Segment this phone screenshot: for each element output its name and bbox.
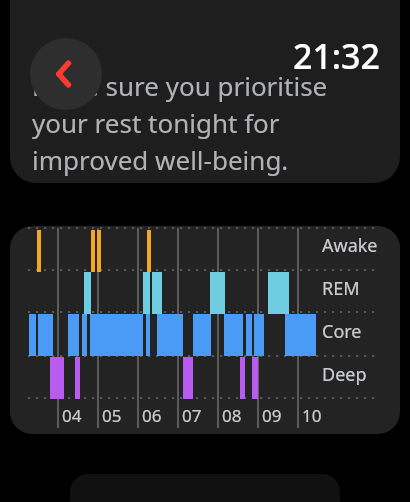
staticText: Deep [322,362,367,387]
staticText: Core [322,319,362,344]
staticText: 06 [142,404,162,427]
staticText: REM [322,276,360,301]
staticText: 21:32 [292,33,380,79]
staticText: 09 [262,404,282,427]
staticText: 05 [102,404,122,427]
button[interactable]: Back [30,38,102,110]
staticText: 08 [222,404,242,427]
staticText: 07 [182,404,202,427]
button[interactable] [10,226,400,434]
staticText: 04 [62,404,82,427]
staticText: 10 [302,404,322,427]
button[interactable]: Make sure you prioritise your rest tonig… [10,0,400,183]
staticText: Awake [322,233,378,258]
staticText: Make sure you prioritise your rest tonig… [32,68,328,178]
